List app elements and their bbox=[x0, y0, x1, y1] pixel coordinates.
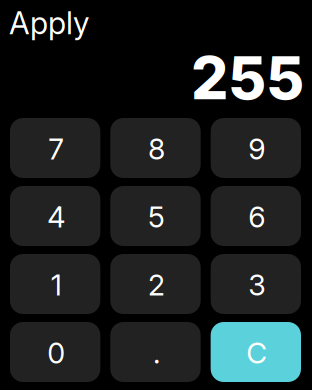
button[interactable]: Clear bbox=[211, 322, 301, 382]
button[interactable]: . bbox=[110, 322, 201, 382]
button[interactable]: 3 bbox=[211, 254, 301, 314]
staticText: . bbox=[153, 336, 160, 370]
button[interactable]: 6 bbox=[211, 186, 301, 246]
staticText: 2 bbox=[148, 268, 165, 302]
button[interactable]: 7 bbox=[10, 118, 100, 178]
staticText: 255 bbox=[191, 42, 304, 113]
staticText: 0 bbox=[47, 336, 65, 370]
staticText: 9 bbox=[248, 132, 265, 166]
staticText: Apply bbox=[9, 4, 89, 41]
button[interactable]: 5 bbox=[110, 186, 201, 246]
button[interactable]: 9 bbox=[211, 118, 301, 178]
button[interactable]: Apply bbox=[9, 7, 129, 39]
staticText: 8 bbox=[148, 132, 165, 166]
staticText: 5 bbox=[148, 200, 165, 234]
button[interactable]: 0 bbox=[10, 322, 100, 382]
staticText: 4 bbox=[47, 200, 65, 234]
staticText: 3 bbox=[248, 268, 265, 302]
button[interactable]: 8 bbox=[110, 118, 201, 178]
staticText: 6 bbox=[248, 200, 265, 234]
staticText: C bbox=[246, 336, 267, 370]
staticText: 1 bbox=[51, 268, 62, 302]
button[interactable]: 2 bbox=[110, 254, 201, 314]
button[interactable]: 4 bbox=[10, 186, 100, 246]
staticText: 7 bbox=[48, 132, 64, 166]
button[interactable]: 1 bbox=[10, 254, 100, 314]
